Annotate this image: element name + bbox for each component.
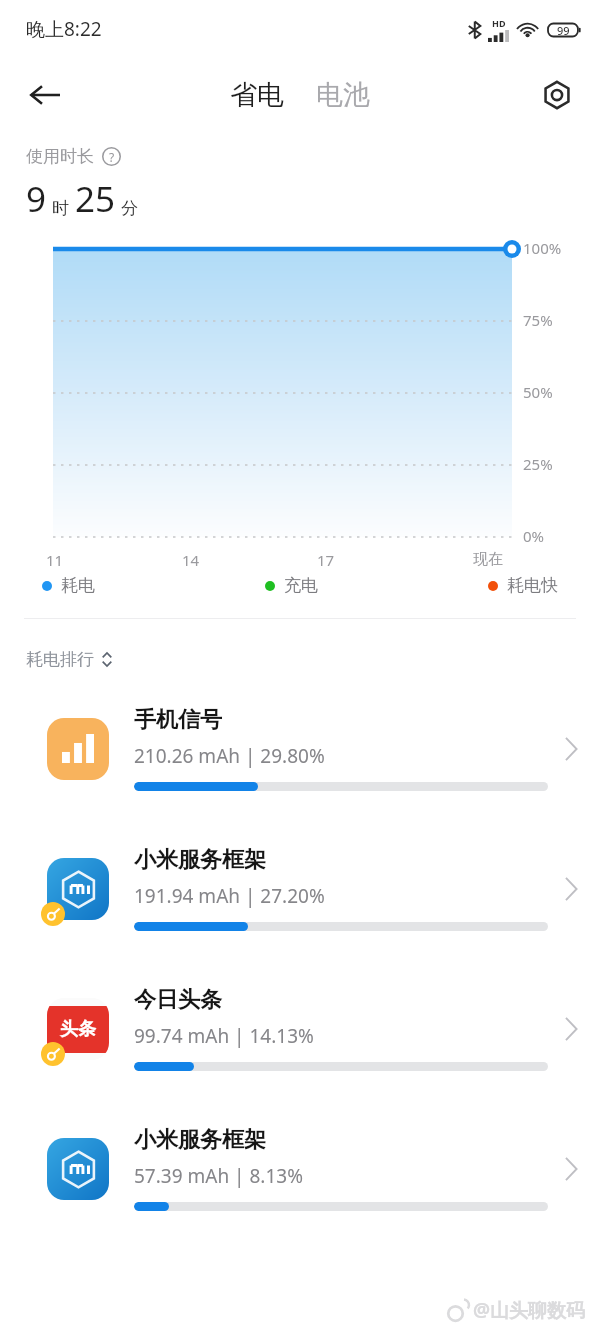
- staticText: 210.26 mAh | 29.80%: [134, 743, 325, 769]
- staticText: 14: [182, 550, 200, 570]
- staticText: 191.94 mAh | 27.20%: [134, 883, 325, 909]
- staticText: 99.74 mAh | 14.13%: [134, 1023, 314, 1049]
- staticText: 小米服务框架: [134, 1126, 266, 1154]
- staticText: 11: [46, 550, 64, 570]
- button[interactable]: 充电: [265, 571, 318, 600]
- staticText: 17: [317, 550, 335, 570]
- staticText: @山头聊数码: [473, 1297, 586, 1323]
- staticText: 耗电排行: [26, 649, 94, 670]
- staticText: 耗电快: [507, 575, 558, 596]
- staticText: 分: [121, 198, 138, 219]
- button[interactable]: 设置: [530, 68, 584, 122]
- staticText: 100%: [523, 238, 562, 258]
- staticText: 省电: [230, 78, 284, 112]
- staticText: 25: [75, 175, 116, 223]
- staticText: 0%: [523, 526, 545, 546]
- staticText: 使用时长: [26, 146, 94, 167]
- staticText: 时: [52, 198, 69, 219]
- button[interactable]: 使用时长说明: [102, 147, 121, 166]
- staticText: 头条: [60, 1018, 96, 1041]
- staticText: 25%: [523, 454, 553, 474]
- button[interactable]: 小米服务框架: [0, 1098, 600, 1238]
- button[interactable]: 耗电: [42, 571, 95, 600]
- staticText: 9: [26, 175, 47, 223]
- staticText: 晚上8:22: [26, 16, 102, 42]
- staticText: 57.39 mAh | 8.13%: [134, 1163, 303, 1189]
- button[interactable]: 耗电快: [488, 571, 558, 600]
- staticText: 75%: [523, 310, 553, 330]
- button[interactable]: 返回: [18, 68, 72, 122]
- staticText: HD: [492, 17, 506, 29]
- staticText: 今日头条: [134, 986, 222, 1014]
- staticText: 现在: [473, 550, 503, 569]
- button[interactable]: 小米服务框架: [0, 818, 600, 958]
- button[interactable]: 耗电排行: [26, 647, 113, 672]
- staticText: ?: [109, 149, 115, 165]
- staticText: 充电: [284, 575, 318, 596]
- staticText: 99: [557, 23, 570, 38]
- staticText: 电池: [316, 78, 370, 112]
- button[interactable]: 省电: [228, 78, 286, 112]
- button[interactable]: 手机信号: [0, 678, 600, 818]
- staticText: 小米服务框架: [134, 846, 266, 874]
- staticText: 50%: [523, 382, 553, 402]
- staticText: 手机信号: [134, 706, 222, 734]
- button[interactable]: 电池: [314, 78, 372, 112]
- button[interactable]: 头条: [0, 958, 600, 1098]
- staticText: 耗电: [61, 575, 95, 596]
